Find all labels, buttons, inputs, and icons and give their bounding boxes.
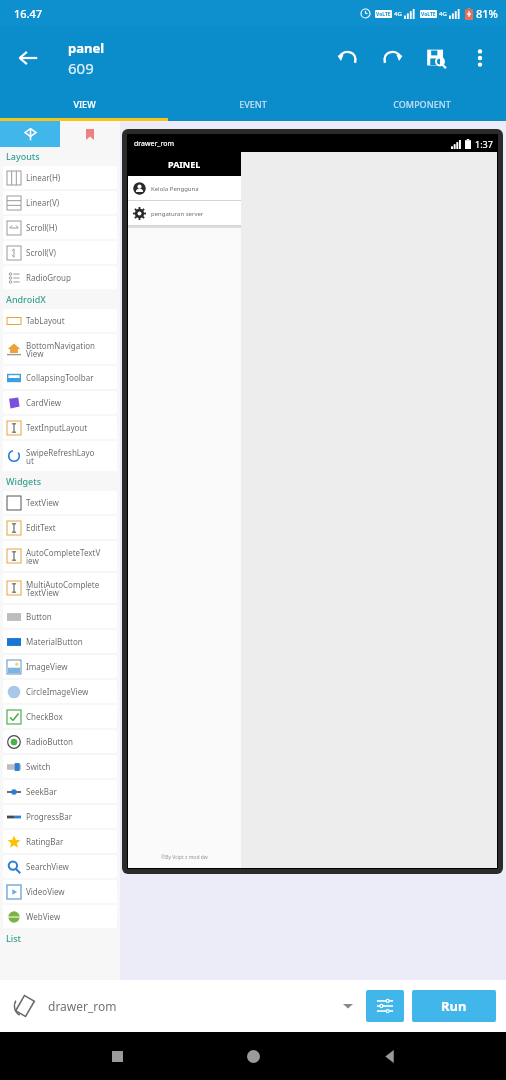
button[interactable]: EVENT xyxy=(168,90,337,118)
staticText: CircleImageView xyxy=(26,686,89,697)
staticText: COMPONENT xyxy=(393,98,451,110)
staticText: drawer_rom xyxy=(134,139,174,149)
button[interactable]: Redo xyxy=(370,36,414,80)
staticText: CardView xyxy=(26,397,62,408)
button[interactable]: Palette xyxy=(0,121,60,147)
button[interactable]: TextView xyxy=(3,491,117,514)
button[interactable]: Undo xyxy=(326,36,370,80)
staticText: VoLTE xyxy=(376,11,391,18)
button[interactable]: CollapsingToolbar xyxy=(3,366,117,389)
staticText: CollapsingToolbar xyxy=(26,372,94,383)
staticText: ProgressBar xyxy=(26,811,73,822)
button[interactable]: Kelola Pengguna xyxy=(128,176,241,201)
button[interactable]: SeekBar xyxy=(3,780,117,803)
staticText: Scroll(H) xyxy=(26,222,58,233)
button[interactable]: More options xyxy=(458,36,502,80)
button[interactable]: TextInputLayout xyxy=(3,416,117,439)
staticText: Button xyxy=(26,611,52,622)
staticText: Linear(V) xyxy=(26,197,60,208)
button[interactable]: ImageView xyxy=(3,655,117,678)
button[interactable]: pengaturan server xyxy=(128,201,241,226)
staticText: TextInputLayout xyxy=(26,422,88,433)
button[interactable]: CheckBox xyxy=(3,705,117,728)
button[interactable]: WebView xyxy=(3,905,117,928)
button[interactable]: MaterialButton xyxy=(3,630,117,653)
staticText: WebView xyxy=(26,911,61,922)
staticText: 4G xyxy=(439,10,447,18)
button[interactable]: Select project xyxy=(336,994,360,1018)
staticText: EVENT xyxy=(239,98,267,110)
button[interactable]: Switch xyxy=(3,755,117,778)
staticText: RatingBar xyxy=(26,836,64,847)
button[interactable]: VideoView xyxy=(3,880,117,903)
button[interactable]: Home xyxy=(233,1036,273,1076)
staticText: ©By Vcipt z mod dw xyxy=(161,854,208,861)
staticText: VideoView xyxy=(26,886,65,897)
staticText: Layouts xyxy=(6,150,40,162)
staticText: Kelola Pengguna xyxy=(151,185,199,193)
button[interactable]: Back xyxy=(370,1036,410,1076)
staticText: Run xyxy=(441,997,467,1015)
staticText: BottomNavigation View xyxy=(26,340,95,359)
button[interactable]: Run xyxy=(412,990,496,1022)
button[interactable]: MultiAutoComplete TextView xyxy=(3,573,117,603)
staticText: Linear(H) xyxy=(26,172,61,183)
button[interactable]: EditText xyxy=(3,516,117,539)
staticText: EditText xyxy=(26,522,56,533)
button[interactable]: Settings xyxy=(366,990,404,1022)
staticText: PAINEL xyxy=(168,158,201,170)
staticText: 609 xyxy=(68,58,94,78)
staticText: AutoCompleteTextV iew xyxy=(26,547,101,566)
staticText: 1:37 xyxy=(475,138,493,150)
staticText: VoLTE xyxy=(421,11,436,18)
button[interactable]: CardView xyxy=(3,391,117,414)
staticText: Switch xyxy=(26,761,51,772)
staticText: ImageView xyxy=(26,661,68,672)
button[interactable]: Favorites xyxy=(60,121,120,147)
button[interactable]: BottomNavigation View xyxy=(3,334,117,364)
staticText: 81% xyxy=(476,6,498,21)
staticText: pengaturan server xyxy=(151,210,204,218)
staticText: drawer_rom xyxy=(48,998,117,1014)
button[interactable]: SearchView xyxy=(3,855,117,878)
button[interactable]: Recents xyxy=(97,1036,137,1076)
staticText: 16.47 xyxy=(14,6,43,21)
staticText: Widgets xyxy=(6,475,42,487)
button[interactable]: Linear(V) xyxy=(3,191,117,214)
staticText: TextView xyxy=(26,497,59,508)
button[interactable]: Scroll(H) xyxy=(3,216,117,239)
button[interactable]: COMPONENT xyxy=(337,90,506,118)
staticText: 4G xyxy=(394,10,402,18)
staticText: TabLayout xyxy=(26,315,65,326)
staticText: RadioGroup xyxy=(26,272,71,283)
button[interactable]: RadioGroup xyxy=(3,266,117,289)
button[interactable]: AutoCompleteTextV iew xyxy=(3,541,117,571)
staticText: SwipeRefreshLayo ut xyxy=(26,447,95,466)
staticText: SearchView xyxy=(26,861,69,872)
button[interactable]: VIEW xyxy=(0,90,168,118)
button[interactable]: SwipeRefreshLayo ut xyxy=(3,441,117,471)
staticText: SeekBar xyxy=(26,786,57,797)
button[interactable]: Scroll(V) xyxy=(3,241,117,264)
button[interactable]: Button xyxy=(3,605,117,628)
staticText: AndroidX xyxy=(6,293,46,305)
staticText: Scroll(V) xyxy=(26,247,56,258)
button[interactable]: RadioButton xyxy=(3,730,117,753)
staticText: VIEW xyxy=(73,98,96,110)
button[interactable]: ProgressBar xyxy=(3,805,117,828)
button[interactable]: Rotate xyxy=(10,991,40,1021)
staticText: CheckBox xyxy=(26,711,63,722)
button[interactable]: TabLayout xyxy=(3,309,117,332)
button[interactable]: Linear(H) xyxy=(3,166,117,189)
button[interactable]: Back xyxy=(6,36,50,80)
staticText: List xyxy=(6,932,22,944)
staticText: MaterialButton xyxy=(26,636,83,647)
button[interactable]: Save xyxy=(414,36,458,80)
staticText: panel xyxy=(68,39,105,57)
button[interactable]: RatingBar xyxy=(3,830,117,853)
staticText: RadioButton xyxy=(26,736,73,747)
staticText: MultiAutoComplete TextView xyxy=(26,579,100,598)
button[interactable]: CircleImageView xyxy=(3,680,117,703)
